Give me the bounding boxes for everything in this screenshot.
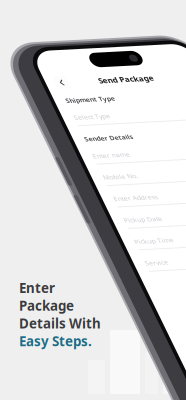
staticText: Package <box>19 297 74 314</box>
staticText: Details With <box>19 314 101 332</box>
staticText: Shipment Type <box>37 105 86 114</box>
staticText: Mobile No. <box>37 190 72 199</box>
staticText: Enter <box>19 279 55 297</box>
button[interactable]: Back <box>35 82 49 96</box>
staticText: Sender Details <box>37 148 85 157</box>
staticText: Select Type <box>37 124 73 133</box>
staticText: Enter name <box>37 167 74 175</box>
staticText: Easy Steps. <box>19 332 92 350</box>
staticText: Service <box>37 286 60 295</box>
